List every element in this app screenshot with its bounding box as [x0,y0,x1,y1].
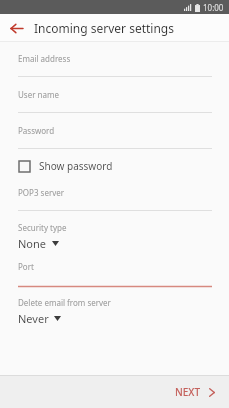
staticText: Security type [18,222,67,233]
staticText: 10:00 [203,2,224,13]
staticText: Port [18,261,34,272]
staticText: Incoming server settings [34,20,174,36]
button[interactable]: Delete email from server [18,287,212,326]
button[interactable]: Password [18,113,212,149]
staticText: None [18,236,47,251]
staticText: Delete email from server [18,297,111,308]
staticText: Show password [39,159,113,173]
button[interactable]: Navigate up [4,16,28,40]
staticText: Never [18,311,49,326]
button[interactable]: Security type [18,211,212,251]
button[interactable]: Port [18,251,212,287]
button[interactable]: POP3 server [18,173,212,211]
button[interactable]: Email address [18,42,212,77]
button[interactable]: NEXT [167,378,223,406]
staticText: POP3 server [18,187,65,198]
button[interactable]: User name [18,77,212,113]
button[interactable]: Show password [18,159,212,173]
staticText: User name [18,89,59,100]
staticText: Email address [18,53,71,64]
staticText: Password [18,125,55,136]
staticText: NEXT [175,385,201,399]
